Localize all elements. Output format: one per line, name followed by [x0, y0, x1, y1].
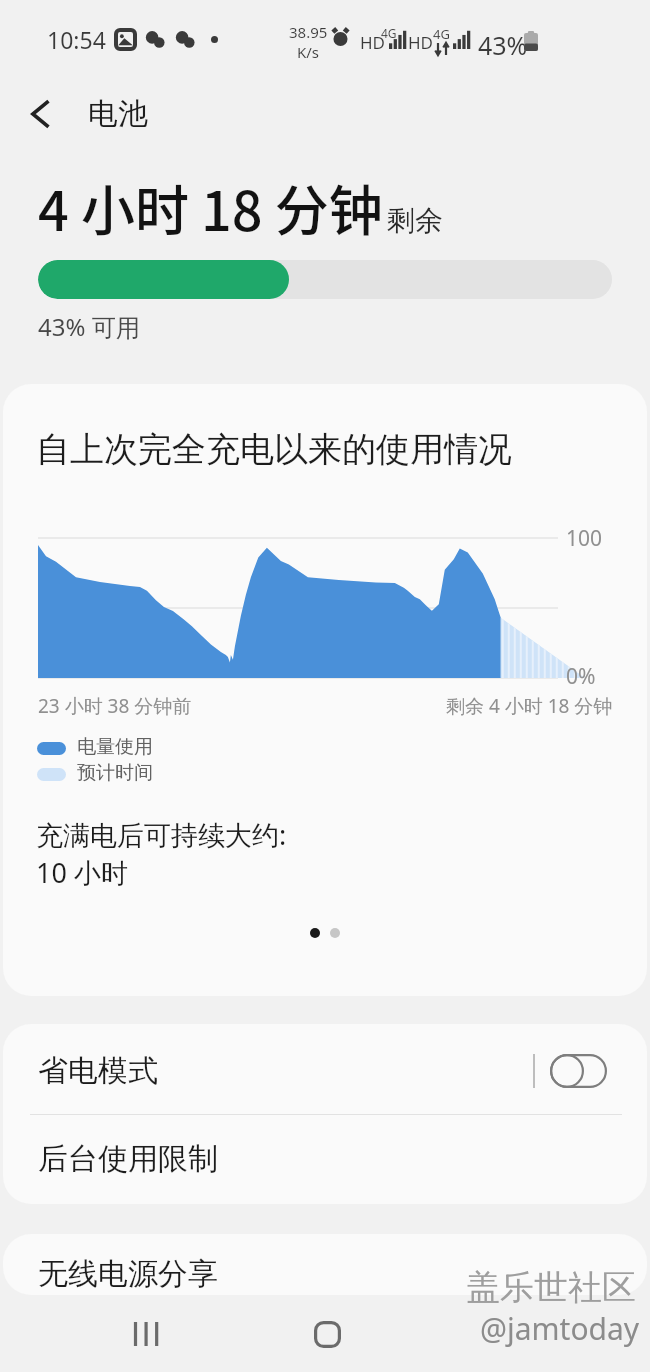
staticText: 10 小时	[36, 854, 128, 891]
staticText: 充满电后可持续大约:	[36, 816, 287, 853]
staticText: 38.95	[289, 22, 328, 42]
staticText: 电池	[88, 95, 148, 133]
staticText: 4G	[433, 25, 450, 43]
staticText: 10:54	[47, 24, 106, 55]
staticText: 省电模式	[38, 1052, 158, 1090]
staticText: 4G	[381, 25, 397, 41]
button[interactable]: 后台使用限制	[3, 1114, 647, 1204]
staticText: 100	[566, 524, 603, 553]
staticText: 无线电源分享	[38, 1255, 218, 1293]
staticText: 剩余 4 小时 18 分钟	[446, 693, 613, 719]
staticText: 剩余	[387, 203, 443, 238]
staticText: @jamtoday	[480, 1308, 640, 1349]
staticText: 预计时间	[77, 761, 153, 785]
staticText: HD	[360, 31, 386, 54]
button[interactable]: 省电模式	[3, 1024, 647, 1113]
staticText: 43% 可用	[38, 310, 140, 343]
staticText: 0%	[566, 662, 596, 691]
staticText: 4 小时 18 分钟	[38, 168, 383, 246]
button[interactable]: 无线电源分享	[3, 1234, 647, 1295]
button[interactable]: Recents	[110, 1296, 180, 1372]
other: Power saving toggle	[550, 1054, 607, 1088]
staticText: K/s	[297, 42, 320, 62]
button[interactable]: Back	[0, 76, 82, 152]
button[interactable]: Home	[292, 1296, 362, 1372]
staticText: 43%	[478, 28, 528, 62]
staticText: HD	[408, 31, 434, 54]
staticText: 电量使用	[77, 735, 153, 759]
staticText: 自上次完全充电以来的使用情况	[36, 428, 512, 471]
staticText: 盖乐世社区	[466, 1266, 636, 1309]
button[interactable]: Back	[475, 1296, 545, 1372]
staticText: 后台使用限制	[38, 1140, 218, 1178]
staticText: 23 小时 38 分钟前	[38, 693, 192, 719]
